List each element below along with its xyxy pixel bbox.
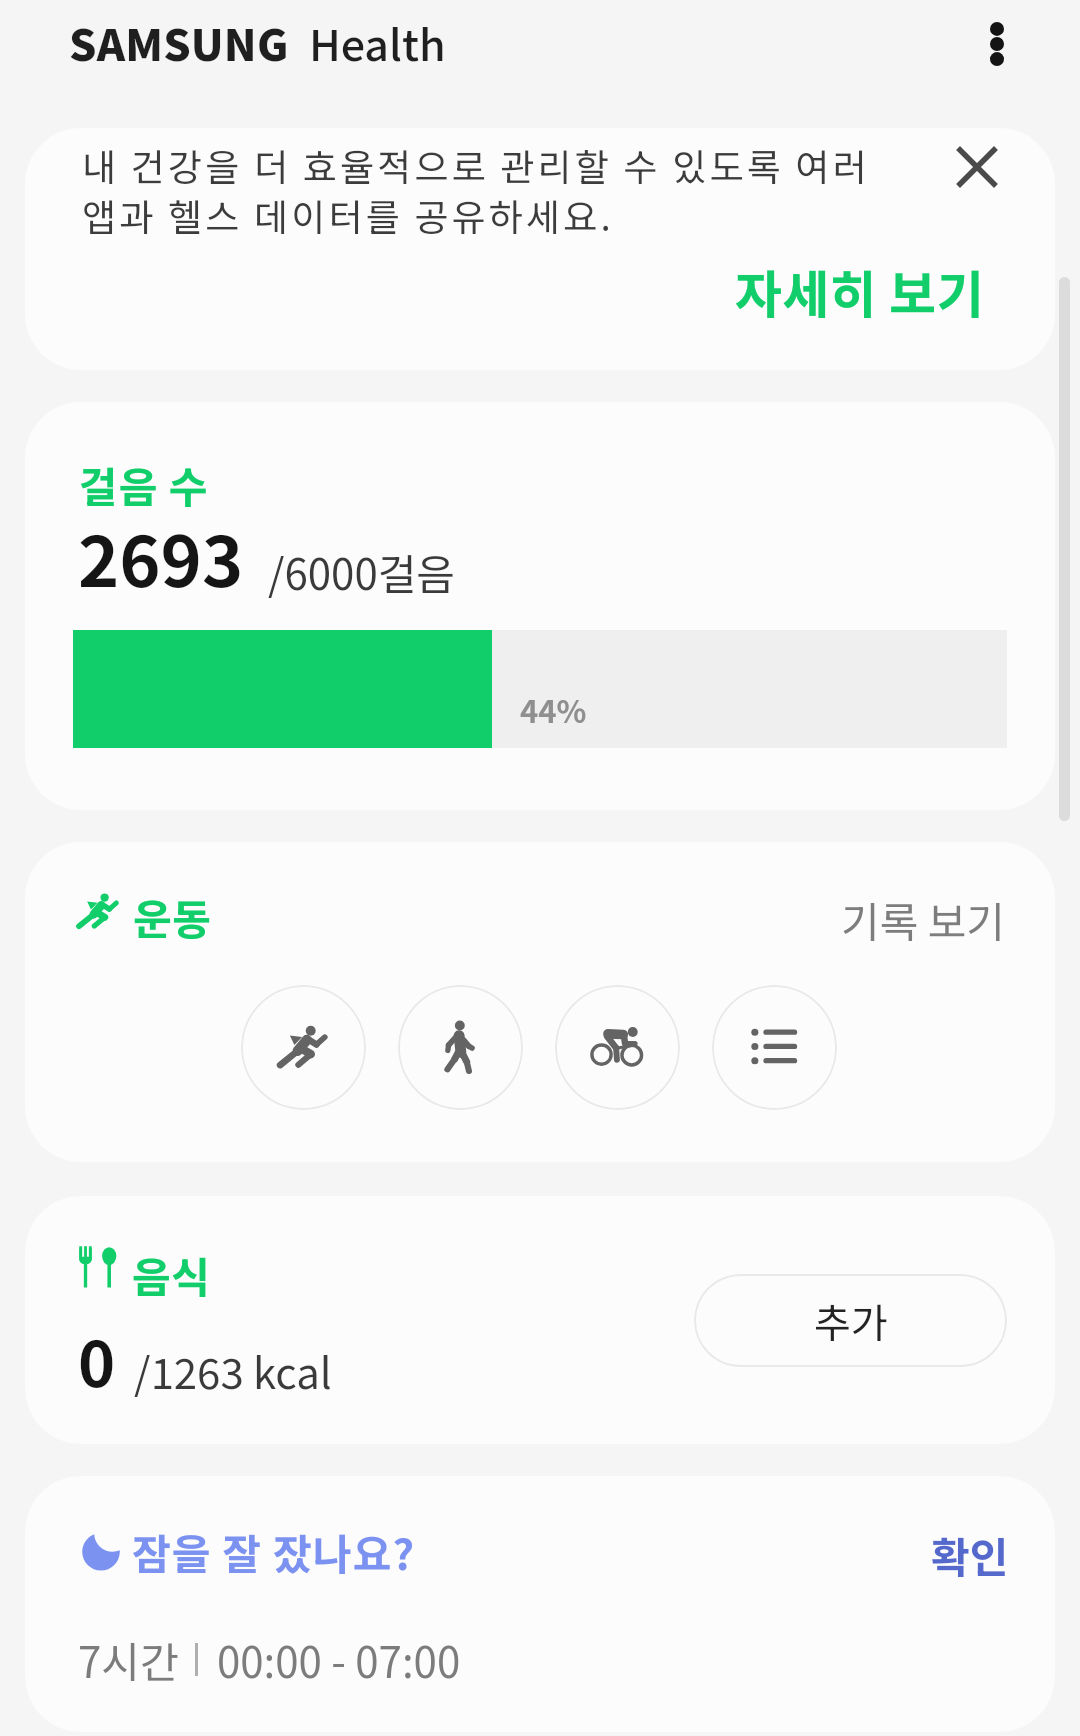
button[interactable]: 추가 — [694, 1274, 1007, 1367]
staticText: SAMSUNG — [69, 11, 289, 73]
staticText: 2693 — [78, 506, 244, 607]
staticText: 음식 — [132, 1244, 211, 1305]
button[interactable]: More exercises — [712, 985, 837, 1110]
staticText: 00:00 - 07:00 — [217, 1629, 461, 1690]
button[interactable]: 확인 — [931, 1524, 1009, 1585]
button[interactable]: Close — [938, 128, 1016, 206]
button[interactable]: 자세히 보기 — [735, 254, 985, 328]
staticText: 내 건강을 더 효율적으로 관리할 수 있도록 여러 앱과 헬스 데이터를 공유… — [82, 138, 870, 242]
staticText: 추가 — [814, 1292, 888, 1350]
staticText: 7시간 — [78, 1629, 179, 1690]
staticText: 걸음 수 — [79, 454, 209, 515]
button[interactable]: 걸음 수 — [25, 402, 1055, 810]
button[interactable]: Running — [241, 985, 366, 1110]
button[interactable]: 기록 보기 — [841, 889, 1005, 950]
staticText: 잠을 잘 잤나요? — [132, 1521, 416, 1582]
staticText: 운동 — [133, 886, 212, 947]
button[interactable]: 잠을 잘 잤나요? — [25, 1476, 1055, 1732]
staticText: 44% — [520, 687, 587, 732]
button[interactable]: Walking — [398, 985, 523, 1110]
button[interactable]: 음식 — [25, 1196, 1055, 1444]
button[interactable]: More options — [966, 13, 1028, 75]
button[interactable]: 내 건강을 더 효율적으로 관리할 수 있도록 여러 앱과 헬스 데이터를 공유… — [25, 128, 1055, 370]
staticText: 0 — [78, 1314, 116, 1405]
button[interactable]: 운동 — [25, 842, 1055, 1162]
staticText: Health — [309, 11, 446, 73]
button[interactable]: Cycling — [555, 985, 680, 1110]
staticText: /1263 kcal — [134, 1340, 332, 1401]
staticText: /6000걸음 — [268, 541, 455, 602]
